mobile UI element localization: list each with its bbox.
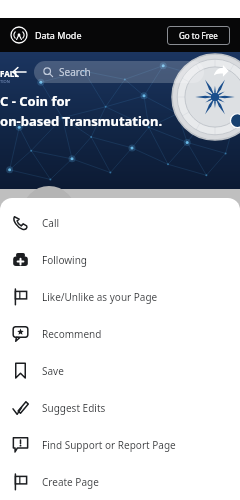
staticText: Call xyxy=(42,216,60,230)
staticText: FALL xyxy=(0,68,19,79)
staticText: Data Mode xyxy=(35,29,82,41)
button[interactable]: Share xyxy=(208,59,234,85)
button[interactable]: Recommend xyxy=(0,315,240,352)
staticText: Recommend xyxy=(42,327,102,341)
button[interactable]: Data Mode xyxy=(10,26,82,44)
staticText: TION xyxy=(0,79,10,84)
button[interactable]: Go to Free xyxy=(167,26,230,45)
button[interactable]: Call xyxy=(0,204,240,241)
button[interactable]: Back xyxy=(6,59,32,85)
button[interactable]: Following xyxy=(0,241,240,278)
staticText: Search xyxy=(59,65,91,79)
button[interactable]: Create Page xyxy=(0,463,240,500)
staticText: Suggest Edits xyxy=(42,401,106,415)
button[interactable]: Find Support or Report Page xyxy=(0,426,240,463)
button[interactable]: Like/Unlike as your Page xyxy=(0,278,240,315)
staticText: Create Page xyxy=(42,475,99,489)
staticText: C - Coin for xyxy=(0,92,71,110)
staticText: Find Support or Report Page xyxy=(42,438,176,452)
staticText: on-based Transmutation. xyxy=(0,112,163,130)
staticText: Save xyxy=(42,364,64,378)
staticText: Like/Unlike as your Page xyxy=(42,290,158,304)
staticText: Go to Free xyxy=(179,30,218,41)
button[interactable]: Save xyxy=(0,352,240,389)
staticText: Following xyxy=(42,253,88,267)
button[interactable]: Suggest Edits xyxy=(0,389,240,426)
button[interactable]: Search xyxy=(34,61,204,83)
